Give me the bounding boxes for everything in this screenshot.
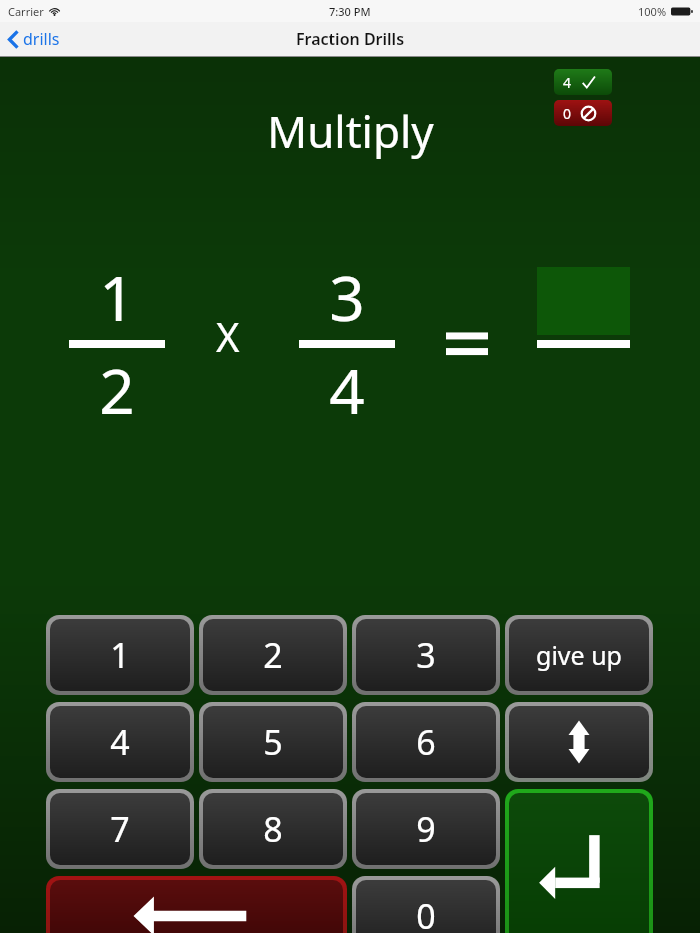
staticText: 2: [99, 348, 135, 432]
staticText: 2: [263, 632, 283, 678]
button[interactable]: Backspace: [50, 880, 343, 933]
button[interactable]: 0: [356, 880, 496, 933]
staticText: 1: [99, 255, 135, 339]
button[interactable]: 4: [50, 706, 190, 778]
staticText: 1: [110, 632, 130, 678]
staticText: 9: [416, 806, 436, 852]
staticText: 0: [563, 104, 572, 123]
staticText: 5: [263, 719, 283, 765]
button[interactable]: Switch numerator and denominator: [509, 706, 649, 778]
button[interactable]: 8: [203, 793, 343, 865]
button[interactable]: 3: [356, 619, 496, 691]
staticText: 8: [263, 806, 283, 852]
button[interactable]: 7: [50, 793, 190, 865]
staticText: 4: [110, 719, 130, 765]
staticText: give up: [536, 638, 622, 672]
staticText: 7:30 PM: [329, 4, 371, 19]
button[interactable]: Wrong answers: 0: [554, 100, 612, 126]
staticText: X: [216, 309, 240, 363]
button[interactable]: Correct answers: 4: [554, 69, 612, 95]
button[interactable]: 5: [203, 706, 343, 778]
staticText: 6: [416, 719, 436, 765]
button[interactable]: 9: [356, 793, 496, 865]
staticText: 4: [329, 348, 365, 432]
staticText: 100%: [638, 4, 667, 19]
button[interactable]: Enter: [509, 793, 649, 933]
button[interactable]: drills: [0, 24, 70, 54]
staticText: Multiply: [267, 101, 434, 161]
staticText: 4: [563, 73, 572, 92]
staticText: 7: [110, 806, 130, 852]
staticText: 0: [416, 893, 436, 933]
staticText: Fraction Drills: [296, 28, 405, 50]
button[interactable]: 1: [50, 619, 190, 691]
staticText: drills: [23, 28, 60, 50]
button[interactable]: give up: [509, 619, 649, 691]
staticText: Carrier: [8, 4, 44, 19]
button[interactable]: 6: [356, 706, 496, 778]
staticText: 3: [416, 632, 436, 678]
staticText: 3: [329, 255, 365, 339]
button[interactable]: 2: [203, 619, 343, 691]
